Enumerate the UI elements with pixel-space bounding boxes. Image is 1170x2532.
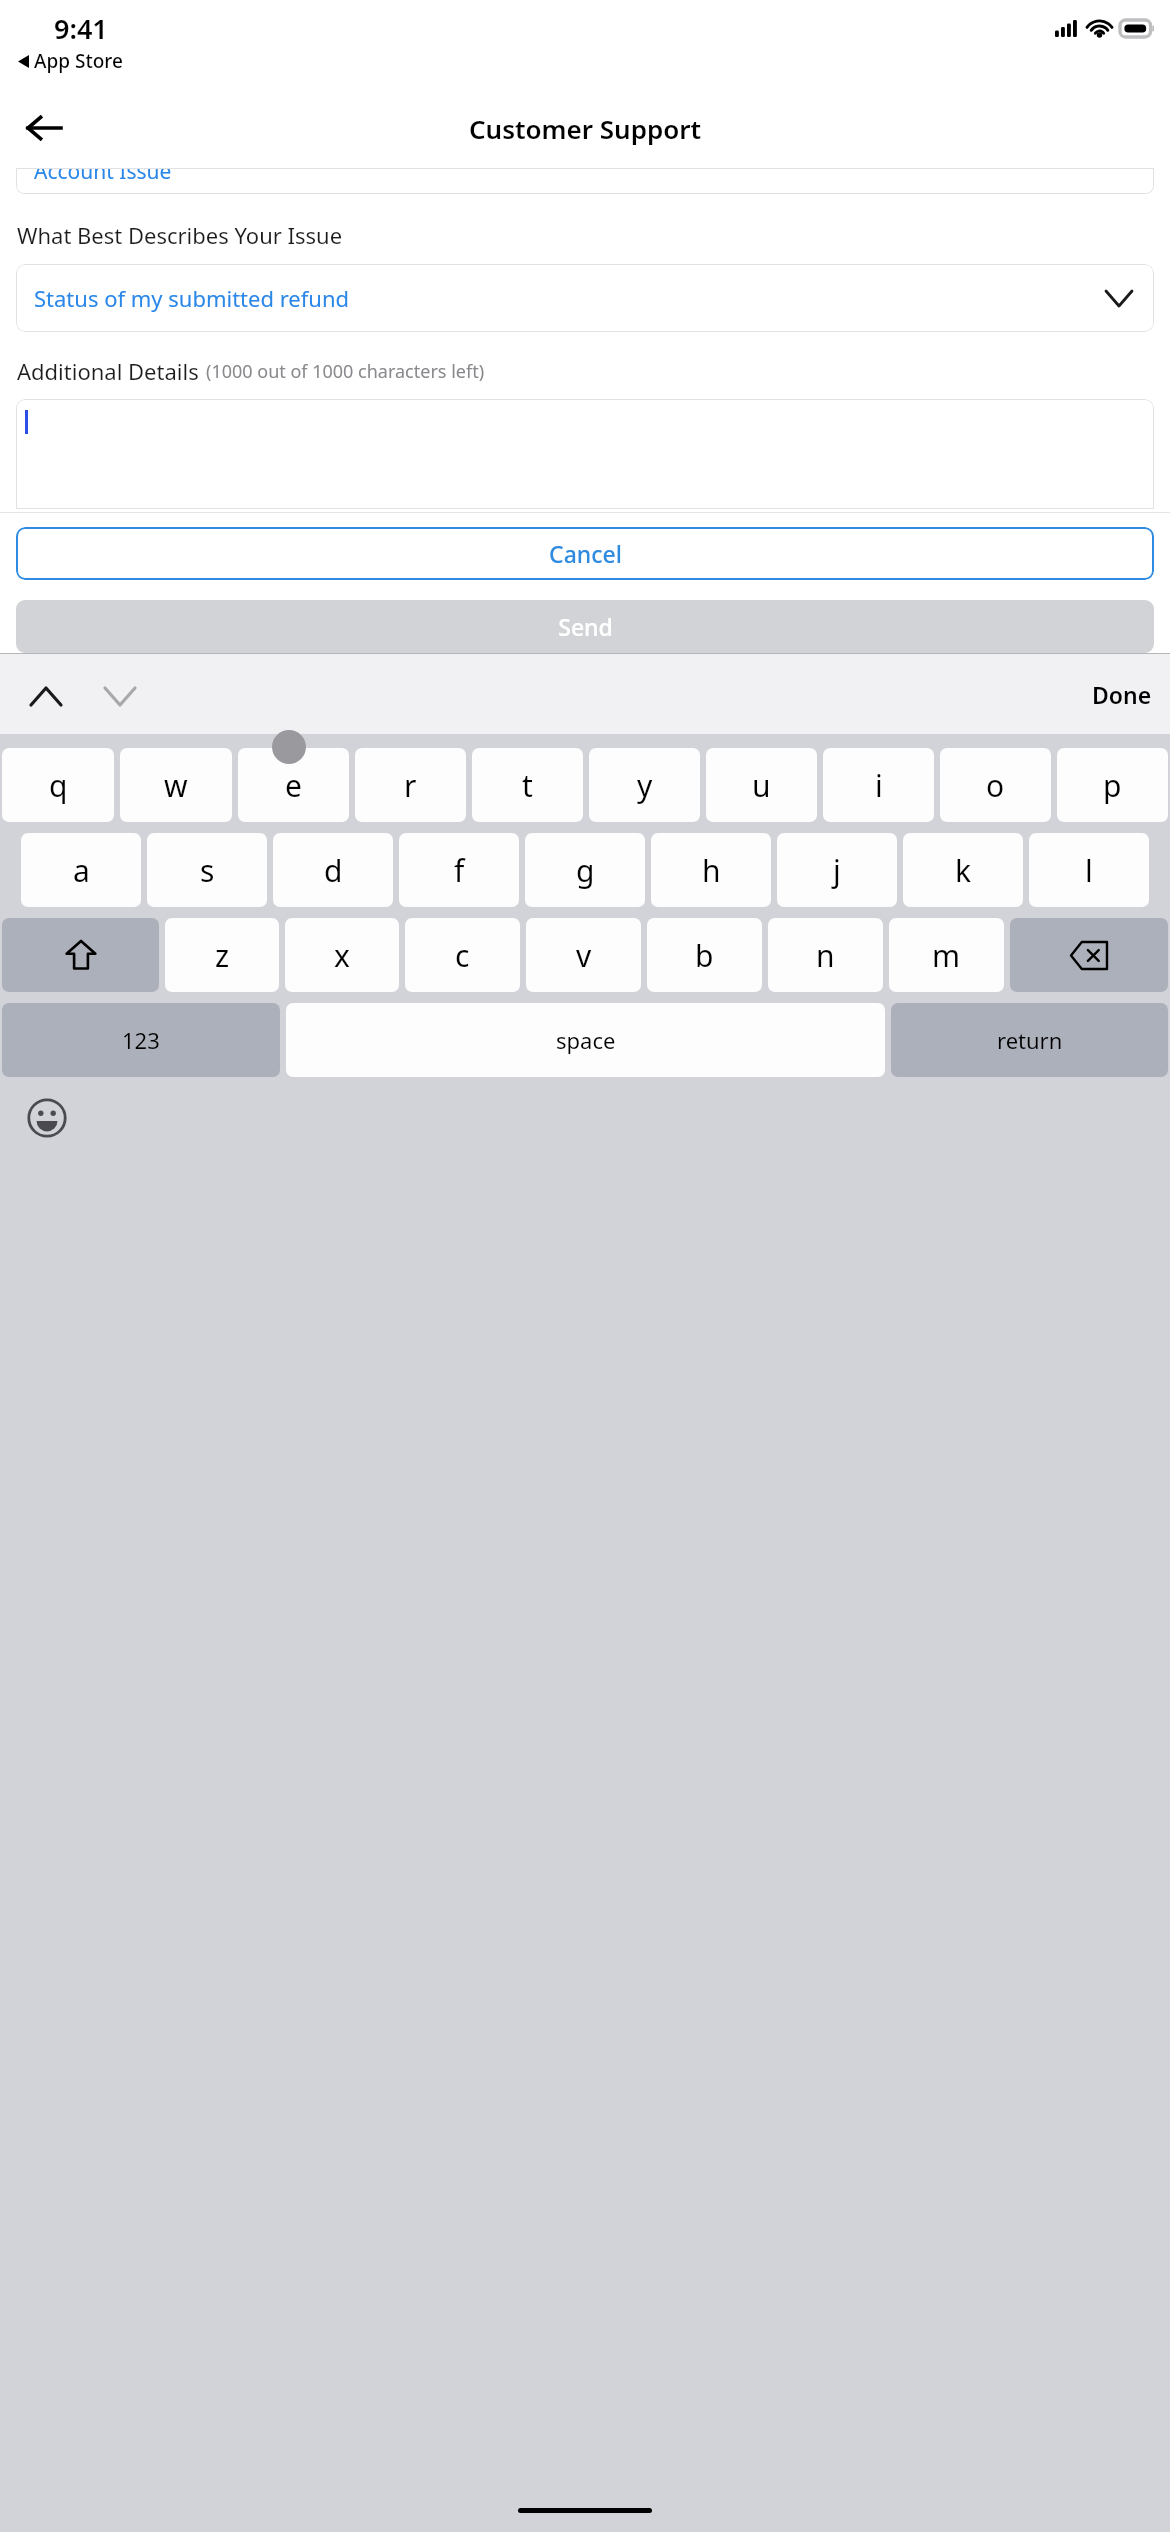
staticText: (1000 out of 1000 characters left) <box>206 359 485 384</box>
staticText: u <box>752 765 771 806</box>
staticText: a <box>73 850 90 891</box>
staticText: i <box>875 765 883 806</box>
button[interactable]: k <box>903 833 1023 907</box>
button[interactable]: q <box>2 748 114 822</box>
button[interactable]: e <box>238 748 349 822</box>
button[interactable]: c <box>405 918 520 992</box>
button[interactable]: Next field <box>96 672 144 720</box>
staticText: f <box>454 850 465 891</box>
staticText: v <box>576 935 592 976</box>
button[interactable]: g <box>525 833 645 907</box>
staticText: Done <box>1092 679 1152 710</box>
staticText: space <box>556 1025 616 1055</box>
staticText: return <box>997 1025 1063 1055</box>
button[interactable]: o <box>940 748 1051 822</box>
staticText: x <box>334 935 350 976</box>
button[interactable]: u <box>706 748 817 822</box>
staticText: j <box>833 850 841 891</box>
staticText: z <box>215 935 230 976</box>
staticText: w <box>164 765 188 806</box>
button[interactable]: r <box>355 748 466 822</box>
staticText: Customer Support <box>469 111 702 146</box>
staticText: Send <box>558 611 613 642</box>
button[interactable]: Account Issue <box>16 168 1154 194</box>
staticText: 9:41 <box>54 10 108 47</box>
staticText: g <box>576 850 595 891</box>
staticText: o <box>986 765 1005 806</box>
button[interactable]: t <box>472 748 583 822</box>
staticText: y <box>637 765 653 806</box>
staticText: h <box>702 850 721 891</box>
staticText: d <box>324 850 343 891</box>
staticText: 123 <box>122 1025 160 1055</box>
staticText: b <box>695 935 714 976</box>
staticText: Cancel <box>549 538 622 569</box>
staticText: App Store <box>34 48 123 74</box>
staticText: l <box>1085 850 1093 891</box>
button[interactable]: Send <box>16 600 1154 653</box>
button[interactable]: z <box>165 918 279 992</box>
button[interactable]: x <box>285 918 399 992</box>
button[interactable]: Back <box>14 98 74 158</box>
button[interactable]: j <box>777 833 897 907</box>
button[interactable]: m <box>889 918 1004 992</box>
staticText: t <box>522 765 533 806</box>
button[interactable]: f <box>399 833 519 907</box>
button[interactable]: return <box>891 1003 1168 1077</box>
button[interactable]: s <box>147 833 267 907</box>
button[interactable]: h <box>651 833 771 907</box>
staticText: Additional Details <box>17 356 199 386</box>
button[interactable]: Done <box>1092 679 1152 710</box>
button[interactable]: v <box>526 918 641 992</box>
staticText: p <box>1103 765 1122 806</box>
staticText: n <box>816 935 835 976</box>
button[interactable]: Previous field <box>22 672 70 720</box>
button[interactable]: 123 <box>2 1003 280 1077</box>
staticText: e <box>285 765 302 806</box>
staticText: What Best Describes Your Issue <box>17 220 343 250</box>
staticText: Account Issue <box>34 168 172 183</box>
button[interactable]: Backspace <box>1010 918 1168 992</box>
staticText: Status of my submitted refund <box>34 283 350 313</box>
button[interactable]: a <box>21 833 141 907</box>
button[interactable]: n <box>768 918 883 992</box>
button[interactable]: Emoji <box>22 1093 72 1143</box>
staticText: m <box>932 935 961 976</box>
staticText: k <box>955 850 972 891</box>
button[interactable]: w <box>120 748 232 822</box>
button[interactable]: space <box>286 1003 885 1077</box>
button[interactable]: Cancel <box>16 527 1154 580</box>
button[interactable]: p <box>1057 748 1168 822</box>
button[interactable]: i <box>823 748 934 822</box>
staticText: c <box>455 935 470 976</box>
button[interactable]: l <box>1029 833 1149 907</box>
button[interactable]: Status of my submitted refund <box>16 264 1154 332</box>
staticText: r <box>404 765 417 806</box>
staticText: q <box>49 765 68 806</box>
button[interactable] <box>16 399 1154 509</box>
button[interactable]: y <box>589 748 700 822</box>
button[interactable]: Shift <box>2 918 159 992</box>
button[interactable]: d <box>273 833 393 907</box>
button[interactable]: b <box>647 918 762 992</box>
staticText: s <box>200 850 215 891</box>
